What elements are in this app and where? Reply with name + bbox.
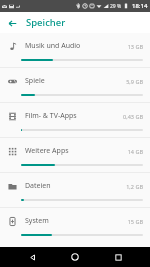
staticText: Dateien [25, 181, 126, 191]
staticText: Spiele [25, 76, 126, 86]
button[interactable]: Zurück [4, 15, 20, 31]
staticText: Weitere Apps [25, 146, 127, 156]
staticText: 15 GB [127, 218, 143, 225]
staticText: 5,9 GB [126, 78, 143, 85]
button[interactable]: Weitere Apps [0, 138, 150, 172]
button[interactable]: Dateien [0, 173, 150, 207]
staticText: 18:14 [132, 2, 148, 10]
button[interactable]: Film- & TV-Apps [0, 103, 150, 137]
button[interactable]: Zurück [21, 247, 43, 267]
button[interactable]: Spiele [0, 68, 150, 102]
staticText: 14 GB [127, 148, 143, 155]
button[interactable]: Letzte Apps [107, 247, 129, 267]
staticText: 0,43 GB [123, 113, 143, 120]
staticText: System [25, 216, 127, 226]
staticText: 1,2 GB [126, 183, 143, 190]
staticText: Musik und Audio [25, 41, 127, 51]
button[interactable]: Musik und Audio [0, 33, 150, 67]
staticText: Film- & TV-Apps [25, 111, 123, 121]
staticText: 29 % [110, 3, 122, 10]
staticText: Speicher [26, 16, 66, 29]
staticText: 13 GB [127, 43, 143, 50]
button[interactable]: System [0, 208, 150, 242]
button[interactable]: Startbildschirm [64, 247, 86, 267]
